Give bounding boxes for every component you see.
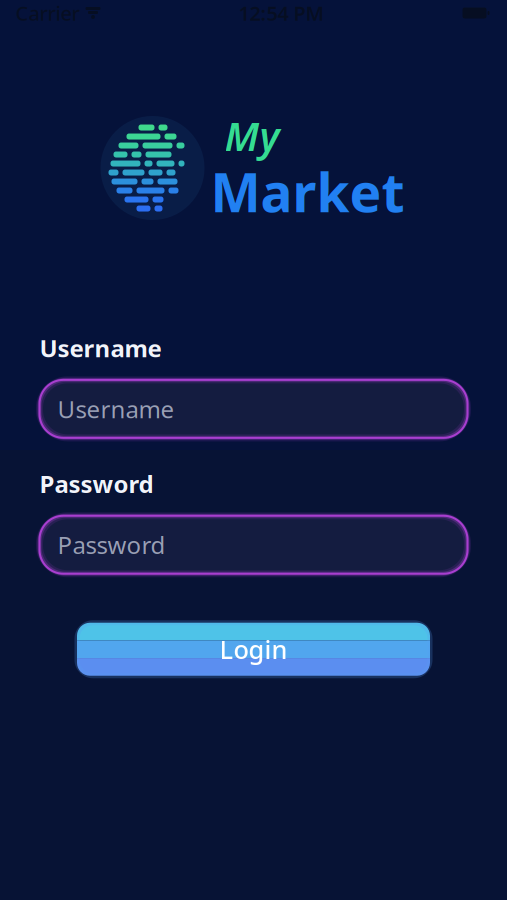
button[interactable]: Login — [77, 623, 430, 676]
staticText: Login — [219, 632, 287, 666]
staticText: Username — [39, 332, 161, 364]
staticText: 12:54 PM — [238, 0, 324, 26]
staticText: Username — [57, 393, 174, 425]
staticText: Carrier — [15, 0, 79, 26]
staticText: Market — [210, 156, 404, 227]
button[interactable]: Password — [0, 516, 507, 574]
staticText: Password — [39, 468, 153, 500]
staticText: Password — [57, 529, 165, 561]
staticText: My — [224, 109, 279, 162]
button[interactable]: Username — [0, 380, 507, 438]
